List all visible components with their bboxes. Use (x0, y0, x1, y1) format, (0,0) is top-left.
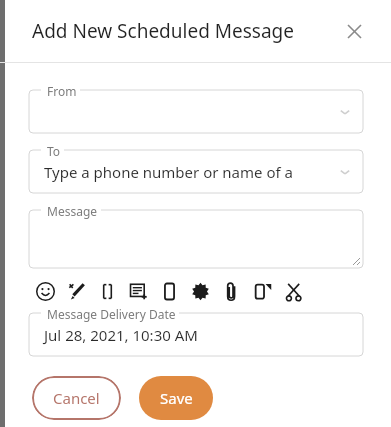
staticText: From (47, 83, 77, 99)
button[interactable]: Placeholder (92, 277, 123, 305)
button[interactable]: Trim (278, 277, 309, 305)
button[interactable]: Emoji (30, 277, 61, 305)
staticText: Jul 28, 2021, 10:30 AM (44, 325, 198, 345)
button[interactable]: Preview (247, 277, 278, 305)
button[interactable]: Attach (216, 277, 247, 305)
staticText: Add New Scheduled Message (32, 18, 294, 44)
button[interactable]: Template (123, 277, 154, 305)
staticText: Cancel (53, 388, 100, 408)
button[interactable]: From (29, 90, 363, 133)
button[interactable]: Sticker (185, 277, 216, 305)
staticText: To (47, 143, 61, 159)
button[interactable]: Personalize (61, 277, 92, 305)
staticText: Message Delivery Date (47, 306, 176, 322)
button[interactable]: Cancel (32, 376, 121, 420)
button[interactable]: To (29, 150, 363, 193)
button[interactable]: Save (139, 376, 213, 420)
button[interactable]: Device (154, 277, 185, 305)
button[interactable]: Message (29, 210, 363, 268)
button[interactable]: Close (339, 16, 369, 46)
staticText: Message (47, 203, 98, 219)
staticText: Save (160, 388, 193, 408)
button[interactable]: Message Delivery Date (29, 313, 363, 356)
staticText: Type a phone number or name of a contact… (44, 162, 329, 182)
